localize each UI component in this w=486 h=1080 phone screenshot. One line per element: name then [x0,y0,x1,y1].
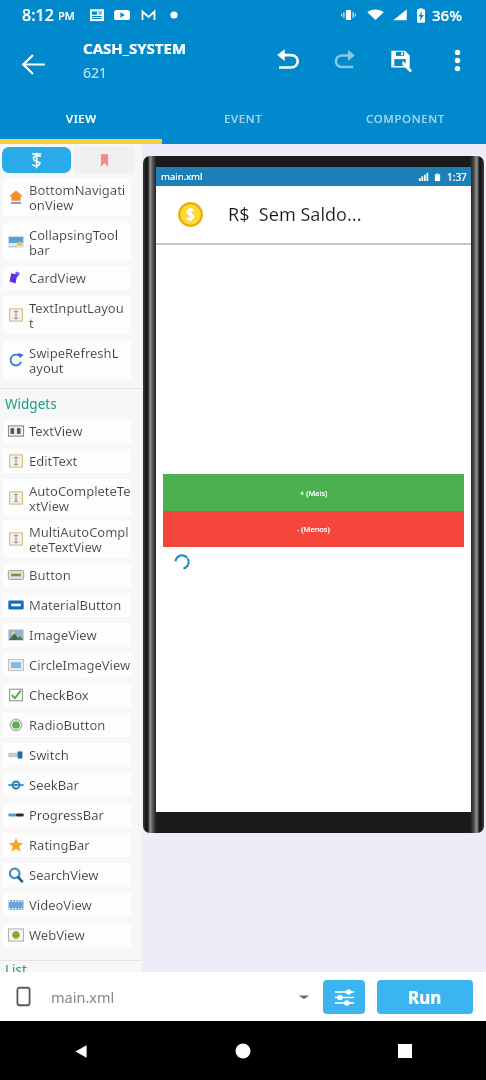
button[interactable]: Back [57,1027,105,1075]
button[interactable]: EditText [8,449,131,473]
button[interactable]: CardView [8,266,131,290]
staticText: WebView [29,926,85,944]
staticText: CASH_SYSTEM [83,38,187,58]
button[interactable]: VIEW [0,98,162,139]
staticText: R$ Sem Saldo... [228,202,362,227]
staticText: SwipeRefreshL ayout [29,344,119,377]
staticText: 8:12 [22,4,54,26]
button[interactable]: EVENT [162,98,324,139]
staticText: - (Menos) [297,524,330,534]
staticText: CheckBox [29,686,89,704]
staticText: main.xml [51,987,115,1007]
button[interactable]: Recents [381,1027,429,1075]
button[interactable]: MultiAutoCompl eteTextView [8,520,131,558]
button[interactable]: BottomNavigati onView [8,178,131,216]
button[interactable]: Button [8,563,131,587]
staticText: TextInputLayou t [29,299,124,332]
staticText: Button [29,566,71,584]
button[interactable]: CheckBox [8,683,131,707]
staticText: 36% [432,5,462,25]
button[interactable]: WebView [8,923,131,947]
button[interactable]: TextInputLayou t [8,296,131,334]
button[interactable]: CollapsingTool bar [8,223,131,261]
button[interactable]: CircleImageView [8,653,131,677]
button[interactable]: Favorites [74,147,134,173]
staticText: PM [58,8,75,23]
staticText: COMPONENT [366,111,445,127]
staticText: RatingBar [29,836,90,854]
button[interactable]: Palette [2,147,71,173]
button[interactable]: SearchView [8,863,131,887]
staticText: SearchView [29,866,99,884]
staticText: CollapsingTool bar [29,226,119,259]
button[interactable]: Settings [323,980,365,1014]
button[interactable]: MaterialButton [8,593,131,617]
button[interactable]: Save [377,37,424,84]
staticText: Switch [29,746,69,764]
button[interactable]: Home [219,1027,267,1075]
button[interactable]: ImageView [8,623,131,647]
staticText: EditText [29,452,78,470]
button[interactable]: Redo [321,37,368,84]
staticText: CardView [29,269,87,287]
staticText: ImageView [29,626,97,644]
staticText: main.xml [161,170,203,183]
staticText: SeekBar [29,776,79,794]
button[interactable]: Switch [8,743,131,767]
button[interactable]: AutoCompleteTe xtView [8,479,131,517]
staticText: Widgets [5,395,57,413]
staticText: CircleImageView [29,656,131,674]
button[interactable]: SeekBar [8,773,131,797]
button[interactable]: Undo [265,37,312,84]
staticText: + (Mais) [300,488,328,498]
button[interactable]: SwipeRefreshL ayout [8,341,131,379]
button[interactable]: Run [377,980,473,1014]
staticText: Run [408,986,442,1009]
staticText: AutoCompleteTe xtView [29,482,131,515]
button[interactable]: TextView [8,419,131,443]
staticText: RadioButton [29,716,106,734]
staticText: EVENT [224,111,263,127]
staticText: 621 [83,63,108,82]
button[interactable]: RatingBar [8,833,131,857]
button[interactable]: + (Mais) [163,474,464,511]
button[interactable]: More options [434,37,481,84]
staticText: VideoView [29,896,92,914]
staticText: MaterialButton [29,596,122,614]
button[interactable]: main.xml [0,972,323,1021]
button[interactable]: - (Menos) [163,511,464,547]
staticText: VIEW [66,111,97,127]
button[interactable]: COMPONENT [324,98,486,139]
button[interactable]: Back [11,42,55,86]
button[interactable]: ProgressBar [8,803,131,827]
staticText: List [5,961,27,972]
button[interactable]: RadioButton [8,713,131,737]
button[interactable]: VideoView [8,893,131,917]
staticText: 1:37 [447,170,467,184]
staticText: ProgressBar [29,806,104,824]
staticText: TextView [29,422,83,440]
staticText: MultiAutoCompl eteTextView [29,523,129,556]
staticText: BottomNavigati onView [29,181,126,214]
